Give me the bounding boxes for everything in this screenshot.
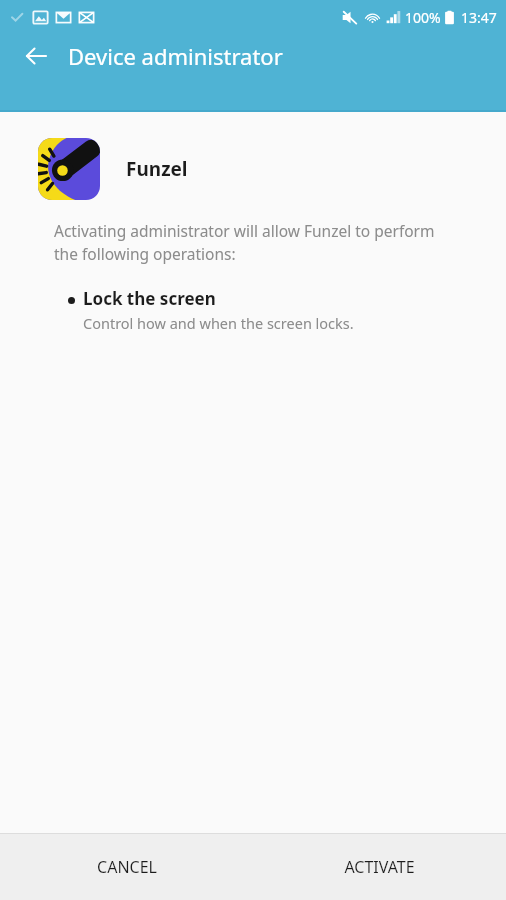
staticText: Activating administrator will allow Funz…	[54, 220, 448, 265]
button[interactable]: ACTIVATE	[253, 834, 506, 900]
button[interactable]: Back	[14, 34, 58, 78]
staticText: Lock the screen	[83, 287, 216, 310]
staticText: 100%	[405, 8, 441, 27]
staticText: CANCEL	[97, 856, 157, 878]
staticText: ACTIVATE	[344, 856, 415, 878]
staticText: Device administrator	[68, 41, 283, 71]
staticText: 13:47	[461, 8, 497, 27]
button[interactable]: CANCEL	[0, 834, 253, 900]
staticText: Control how and when the screen locks.	[83, 313, 354, 333]
staticText: Funzel	[126, 156, 188, 182]
